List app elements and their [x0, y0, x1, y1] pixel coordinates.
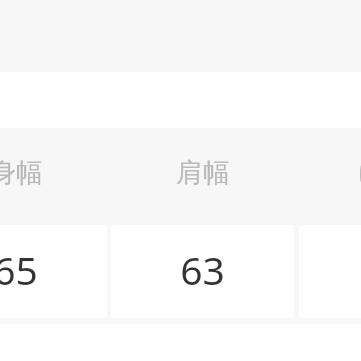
staticText: 63 — [180, 243, 225, 296]
staticText: 身幅 — [0, 156, 43, 190]
button[interactable]: 65 — [0, 225, 107, 318]
staticText: ゆき丈 — [358, 156, 361, 190]
staticText: 肩幅 — [176, 156, 230, 190]
button[interactable]: 身幅 — [0, 128, 107, 225]
staticText: 65 — [0, 243, 38, 296]
button[interactable]: 肩幅 — [111, 128, 294, 225]
button[interactable]: 63 — [111, 225, 294, 318]
